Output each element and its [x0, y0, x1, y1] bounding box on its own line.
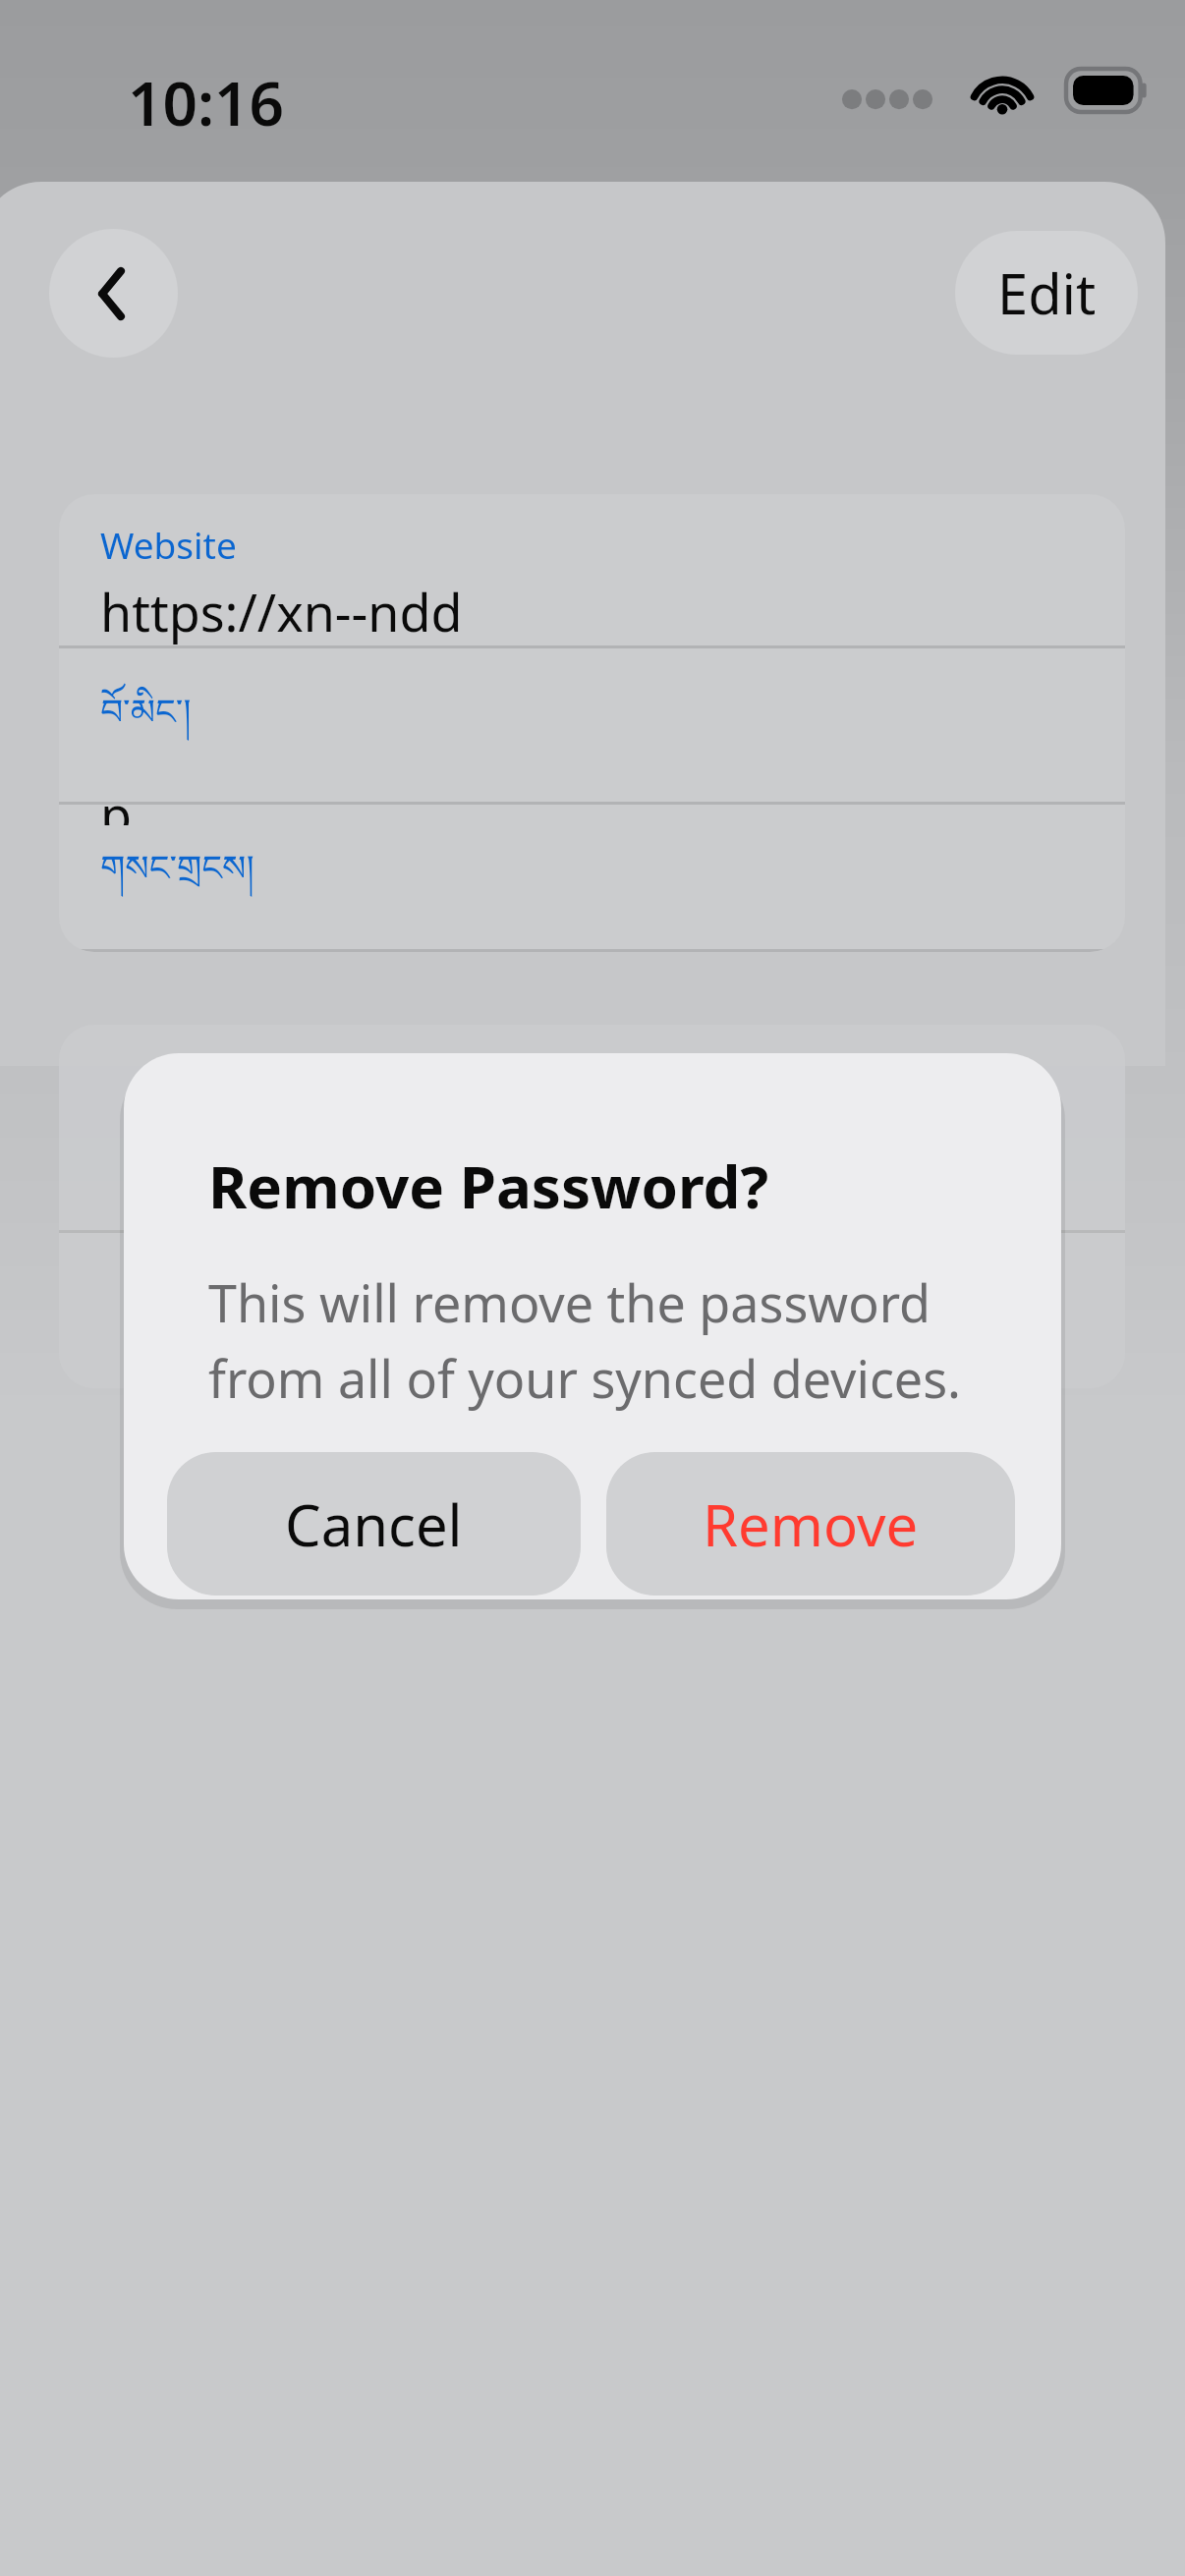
- staticText: Remove: [703, 1485, 919, 1563]
- staticText: Cancel: [285, 1485, 463, 1563]
- staticText: བོ་མིང་།: [100, 672, 192, 771]
- button[interactable]: Cancel: [167, 1452, 581, 1596]
- staticText: This will remove the password from all o…: [208, 1267, 992, 1413]
- button[interactable]: བོ་མིང་།: [59, 648, 1125, 802]
- staticText: 10:16: [128, 61, 284, 143]
- button[interactable]: Website: [59, 494, 1125, 645]
- staticText: https://xn--ndd: [100, 577, 463, 646]
- staticText: p: [100, 779, 132, 825]
- staticText: Website: [100, 520, 237, 569]
- button[interactable]: Remove: [606, 1452, 1015, 1596]
- button[interactable]: གསང་གྲངས།: [59, 805, 1125, 949]
- button[interactable]: Edit: [955, 231, 1138, 355]
- staticText: Edit: [997, 255, 1097, 330]
- staticText: གསང་གྲངས།: [100, 828, 254, 927]
- button[interactable]: Back: [49, 229, 178, 358]
- staticText: Remove Password?: [208, 1146, 769, 1226]
